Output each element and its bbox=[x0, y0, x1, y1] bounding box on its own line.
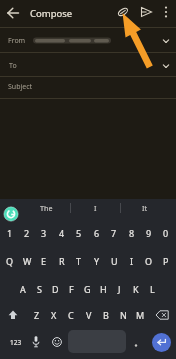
staticText: 9 bbox=[146, 227, 152, 239]
button[interactable]: H bbox=[95, 279, 111, 299]
button[interactable]: P bbox=[158, 251, 174, 271]
button[interactable]: W bbox=[19, 251, 35, 271]
button[interactable]: 3 bbox=[36, 223, 52, 243]
button[interactable]: 4 bbox=[54, 223, 70, 243]
staticText: 6 bbox=[94, 227, 100, 239]
button[interactable]: C bbox=[63, 305, 79, 325]
staticText: The bbox=[40, 203, 53, 213]
button[interactable]: 6 bbox=[89, 223, 105, 243]
button[interactable]: It bbox=[135, 200, 155, 216]
button[interactable]: 7 bbox=[106, 223, 122, 243]
button[interactable]: To bbox=[5, 59, 21, 73]
button[interactable]: E bbox=[36, 251, 52, 271]
staticText: 1 bbox=[7, 227, 13, 239]
staticText: S bbox=[37, 283, 42, 295]
button[interactable] bbox=[2, 205, 20, 223]
staticText: W bbox=[23, 255, 32, 267]
staticText: N bbox=[120, 309, 127, 321]
button[interactable]: Y bbox=[89, 251, 105, 271]
button[interactable] bbox=[4, 305, 22, 325]
staticText: D bbox=[52, 283, 59, 295]
button[interactable]: Subject bbox=[4, 80, 36, 94]
button[interactable] bbox=[28, 333, 44, 351]
staticText: I bbox=[94, 203, 97, 213]
button[interactable]: O bbox=[141, 251, 157, 271]
button[interactable]: 1 bbox=[2, 223, 18, 243]
button[interactable] bbox=[137, 3, 155, 21]
button[interactable]: 5 bbox=[71, 223, 87, 243]
staticText: M bbox=[136, 309, 145, 321]
staticText: C bbox=[68, 309, 74, 321]
button[interactable]: A bbox=[15, 279, 31, 299]
button[interactable]: D bbox=[47, 279, 63, 299]
staticText: To bbox=[9, 61, 17, 71]
staticText: V bbox=[86, 309, 92, 321]
button[interactable]: 2 bbox=[19, 223, 35, 243]
button[interactable]: G bbox=[79, 279, 95, 299]
staticText: B bbox=[103, 309, 109, 321]
button[interactable]: Z bbox=[29, 305, 45, 325]
button[interactable] bbox=[159, 34, 173, 48]
button[interactable]: K bbox=[128, 279, 144, 299]
staticText: 0 bbox=[163, 227, 169, 239]
button[interactable]: S bbox=[31, 279, 47, 299]
staticText: It bbox=[142, 203, 148, 213]
button[interactable] bbox=[49, 333, 65, 351]
button[interactable]: X bbox=[46, 305, 62, 325]
staticText: E bbox=[41, 255, 47, 267]
button[interactable]: 0 bbox=[158, 223, 174, 243]
button[interactable]: T bbox=[71, 251, 87, 271]
staticText: Q bbox=[6, 255, 14, 267]
staticText: U bbox=[111, 255, 118, 267]
button[interactable] bbox=[159, 3, 173, 21]
button[interactable]: 123 bbox=[5, 334, 27, 350]
button[interactable] bbox=[152, 333, 171, 352]
button[interactable] bbox=[159, 59, 173, 73]
button[interactable] bbox=[130, 336, 142, 352]
staticText: Y bbox=[94, 255, 100, 267]
button[interactable] bbox=[4, 4, 22, 22]
button[interactable]: V bbox=[81, 305, 97, 325]
staticText: I bbox=[130, 255, 134, 267]
staticText: 5 bbox=[76, 227, 82, 239]
staticText: X bbox=[51, 309, 57, 321]
staticText: O bbox=[145, 255, 153, 267]
button[interactable]: U bbox=[106, 251, 122, 271]
staticText: Subject bbox=[8, 82, 33, 92]
button[interactable]: J bbox=[111, 279, 127, 299]
button[interactable]: M bbox=[132, 305, 148, 325]
button[interactable] bbox=[114, 3, 132, 21]
button[interactable]: F bbox=[63, 279, 79, 299]
button[interactable]: R bbox=[54, 251, 70, 271]
staticText: L bbox=[150, 283, 155, 295]
staticText: 2 bbox=[24, 227, 30, 239]
button[interactable] bbox=[152, 305, 172, 325]
button[interactable]: Compose bbox=[21, 4, 81, 22]
staticText: 8 bbox=[129, 227, 135, 239]
staticText: From bbox=[8, 36, 26, 46]
staticText: A bbox=[20, 283, 26, 295]
staticText: 123 bbox=[10, 338, 22, 347]
button[interactable]: I bbox=[85, 200, 105, 216]
staticText: K bbox=[133, 283, 139, 295]
button[interactable]: Q bbox=[2, 251, 18, 271]
button[interactable]: N bbox=[115, 305, 131, 325]
staticText: J bbox=[118, 283, 121, 295]
button[interactable]: 9 bbox=[141, 223, 157, 243]
button[interactable]: The bbox=[30, 200, 62, 216]
button[interactable]: B bbox=[98, 305, 114, 325]
staticText: Compose bbox=[30, 7, 73, 20]
button[interactable]: L bbox=[144, 279, 160, 299]
staticText: R bbox=[59, 255, 65, 267]
staticText: T bbox=[76, 255, 82, 267]
staticText: P bbox=[163, 255, 169, 267]
button[interactable]: 8 bbox=[124, 223, 140, 243]
staticText: F bbox=[69, 283, 74, 295]
staticText: 7 bbox=[111, 227, 117, 239]
button[interactable]: From bbox=[4, 34, 30, 48]
button[interactable]: I bbox=[124, 251, 140, 271]
staticText: G bbox=[84, 283, 91, 295]
staticText: Z bbox=[34, 309, 40, 321]
staticText: 4 bbox=[59, 227, 65, 239]
